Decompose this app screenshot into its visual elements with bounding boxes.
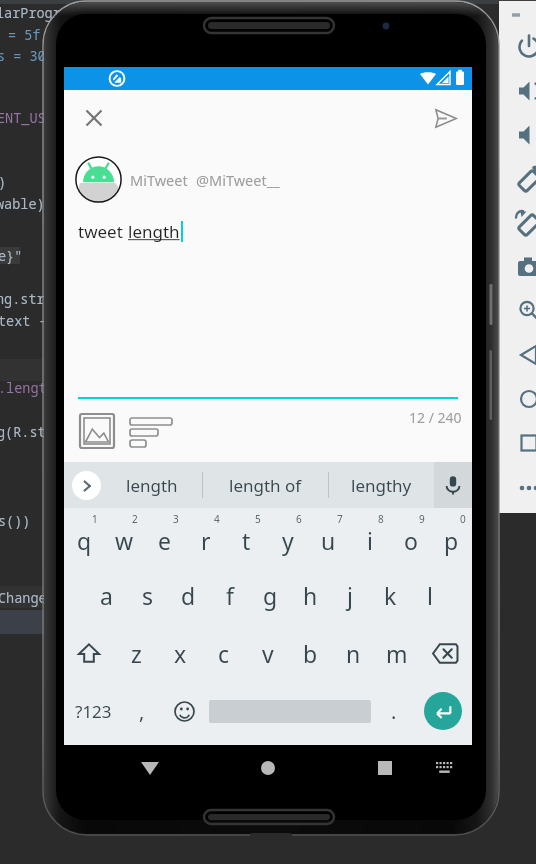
staticText: q: [77, 525, 92, 556]
button[interactable]: c: [202, 624, 246, 682]
button[interactable]: g: [250, 566, 290, 624]
button[interactable]: b: [289, 624, 332, 682]
button[interactable]: Screenshot: [499, 245, 536, 289]
staticText: 0: [460, 512, 466, 526]
button[interactable]: 8: [349, 508, 390, 566]
button[interactable]: x: [158, 624, 202, 682]
staticText: @MiTweet__: [196, 170, 280, 190]
button[interactable]: 3: [144, 508, 185, 566]
staticText: d: [181, 580, 196, 611]
button[interactable]: Zoom: [499, 289, 536, 333]
staticText: tweet: [78, 220, 128, 243]
button[interactable]: 4: [185, 508, 226, 566]
button[interactable]: a: [86, 566, 127, 624]
button[interactable]: Backspace: [418, 624, 472, 682]
button[interactable]: Home: [240, 745, 296, 790]
button[interactable]: Enter: [424, 692, 462, 730]
button[interactable]: n: [332, 624, 375, 682]
button[interactable]: Send tweet: [423, 96, 467, 140]
staticText: s: [142, 580, 154, 611]
staticText: MiTweet: [130, 170, 188, 190]
staticText: ): [0, 173, 7, 191]
button[interactable]: Back: [122, 745, 178, 790]
button[interactable]: 1: [64, 508, 104, 566]
button[interactable]: Home: [499, 377, 536, 421]
staticText: 12 / 240: [409, 408, 462, 427]
button[interactable]: Expand suggestions: [72, 471, 101, 500]
staticText: Changed: [0, 589, 55, 607]
button[interactable]: Rotate left: [499, 158, 536, 202]
button[interactable]: Back: [499, 333, 536, 377]
staticText: text -: [0, 312, 47, 330]
button[interactable]: k: [370, 566, 410, 624]
button[interactable]: Shift: [64, 624, 114, 682]
button[interactable]: f: [209, 566, 250, 624]
staticText: 3: [173, 512, 179, 526]
staticText: v: [262, 638, 274, 669]
button[interactable]: lengthy: [329, 462, 434, 508]
staticText: c: [218, 638, 230, 669]
staticText: g(R.st: [0, 423, 46, 441]
staticText: e: [158, 525, 171, 556]
button[interactable]: Recents: [357, 745, 413, 790]
button[interactable]: Emoji: [162, 682, 206, 740]
button[interactable]: m: [375, 624, 418, 682]
button[interactable]: Volume up: [499, 69, 536, 113]
staticText: ENT_US: [0, 109, 46, 127]
button[interactable]: d: [168, 566, 209, 624]
staticText: i: [367, 525, 373, 556]
staticText: .: [391, 698, 397, 725]
button[interactable]: 5: [226, 508, 267, 566]
staticText: o: [404, 525, 418, 556]
staticText: ?123: [75, 700, 112, 723]
staticText: 2: [132, 512, 138, 526]
button[interactable]: Volume down: [499, 113, 536, 157]
staticText: r: [201, 525, 211, 556]
button[interactable]: v: [246, 624, 289, 682]
staticText: = 5f: [8, 26, 41, 44]
button[interactable]: Switch keyboard: [416, 745, 472, 790]
button[interactable]: ?123: [64, 682, 122, 740]
button[interactable]: More: [499, 466, 536, 510]
staticText: wable): [0, 195, 45, 213]
staticText: m: [386, 638, 408, 669]
button[interactable]: Add image: [78, 412, 116, 450]
staticText: 4: [214, 512, 220, 526]
staticText: length of: [229, 474, 302, 497]
button[interactable]: z: [114, 624, 158, 682]
button[interactable]: s: [127, 566, 168, 624]
button[interactable]: l: [410, 566, 450, 624]
button[interactable]: .: [374, 682, 414, 740]
staticText: w: [115, 525, 134, 556]
staticText: 6: [296, 512, 302, 526]
button[interactable]: Overview: [499, 421, 536, 465]
staticText: j: [347, 580, 353, 611]
staticText: g: [263, 580, 278, 611]
staticText: 7: [337, 512, 343, 526]
staticText: p: [444, 525, 459, 556]
staticText: ,: [139, 698, 145, 725]
button[interactable]: h: [290, 566, 330, 624]
staticText: s = 30: [0, 47, 46, 65]
staticText: z: [131, 638, 142, 669]
button[interactable]: 2: [104, 508, 144, 566]
staticText: e}": [0, 247, 23, 265]
button[interactable]: Power: [499, 25, 536, 69]
button[interactable]: 0: [431, 508, 472, 566]
button[interactable]: Add poll: [126, 412, 178, 450]
button[interactable]: 6: [267, 508, 308, 566]
button[interactable]: ,: [122, 682, 162, 740]
button[interactable]: 7: [308, 508, 349, 566]
button[interactable]: 9: [390, 508, 431, 566]
staticText: s()): [0, 512, 31, 530]
staticText: length: [128, 220, 180, 243]
staticText: larProgres: [0, 4, 77, 22]
button[interactable]: length of: [203, 462, 328, 508]
button[interactable]: Space: [206, 682, 374, 740]
button[interactable]: length: [101, 462, 202, 508]
button[interactable]: Rotate right: [499, 202, 536, 246]
button[interactable]: Voice input: [434, 462, 472, 508]
button[interactable]: Close: [72, 96, 116, 140]
staticText: l: [427, 580, 433, 611]
button[interactable]: j: [330, 566, 370, 624]
